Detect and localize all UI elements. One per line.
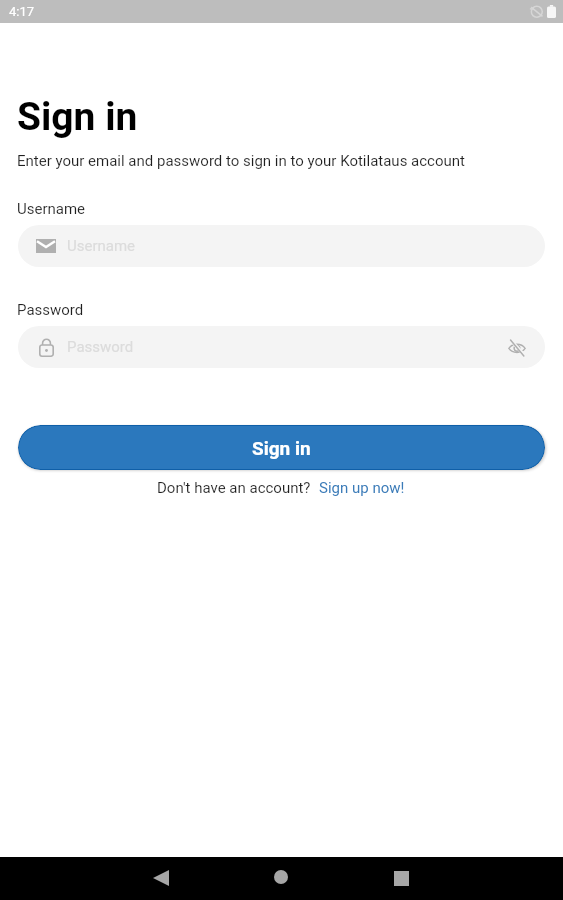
button[interactable]: Show password — [505, 336, 527, 358]
button[interactable]: Sign in — [19, 426, 544, 469]
button[interactable]: Sign up now! — [319, 479, 405, 497]
staticText: Sign in — [252, 437, 311, 459]
staticText: 4:17 — [9, 4, 35, 19]
staticText: Password — [67, 338, 505, 356]
staticText: Don't have an account? — [157, 479, 311, 497]
button[interactable]: Recent apps — [381, 858, 421, 898]
button[interactable]: Username — [18, 225, 545, 267]
button[interactable]: Home — [261, 857, 301, 897]
button[interactable]: Password — [18, 326, 545, 368]
staticText: Username — [67, 237, 527, 255]
button[interactable]: Back — [141, 858, 181, 898]
staticText: Sign up now! — [319, 479, 405, 497]
staticText: Enter your email and password to sign in… — [17, 152, 465, 170]
staticText: Username — [17, 200, 86, 218]
staticText: Sign in — [17, 94, 138, 140]
staticText: Password — [17, 301, 84, 319]
